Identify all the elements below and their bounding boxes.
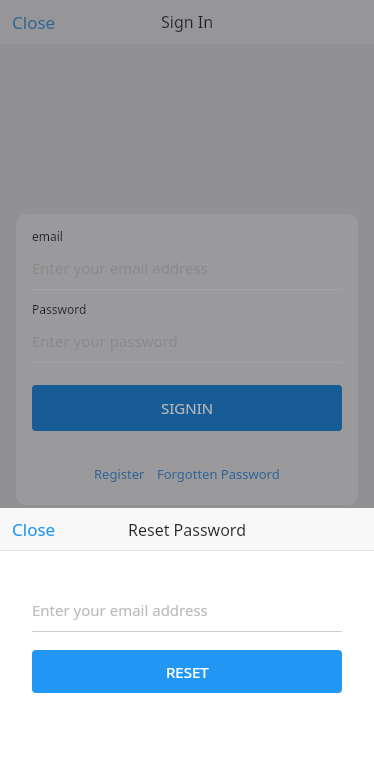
button[interactable]: Forgotten Password	[151, 461, 286, 487]
button[interactable]: RESET	[32, 650, 342, 693]
staticText: Enter your password	[32, 331, 178, 351]
button[interactable]: Close	[0, 1, 68, 44]
staticText: Enter your email address	[32, 600, 208, 620]
button[interactable]: Close	[0, 508, 68, 551]
staticText: Enter your email address	[32, 258, 208, 278]
staticText: Close	[12, 11, 56, 34]
staticText: Reset Password	[128, 519, 246, 541]
staticText: Register	[94, 465, 145, 483]
staticText: Sign In	[161, 11, 214, 33]
staticText: SIGNIN	[161, 398, 214, 418]
button[interactable]: SIGNIN	[32, 385, 342, 431]
button[interactable]: Register	[88, 461, 151, 487]
staticText: email	[32, 228, 63, 244]
staticText: Password	[32, 301, 87, 317]
staticText: Forgotten Password	[157, 465, 280, 483]
staticText: Close	[12, 518, 56, 541]
staticText: RESET	[166, 662, 209, 682]
